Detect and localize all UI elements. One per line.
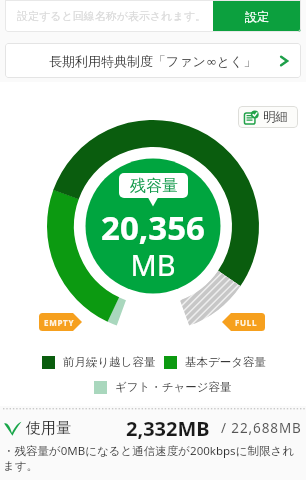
staticText: EMPTY — [44, 317, 75, 328]
button[interactable]: Empty — [39, 313, 82, 331]
button[interactable]: Full — [222, 313, 265, 331]
staticText: 設定 — [245, 9, 269, 24]
button[interactable]: 明細 — [244, 106, 298, 128]
staticText: 使用量 — [26, 419, 71, 438]
staticText: 20,356 — [0, 205, 306, 250]
staticText: 前月繰り越し容量 — [63, 355, 156, 369]
staticText: 明細 — [263, 109, 288, 125]
button[interactable]: 設定 — [213, 0, 301, 32]
staticText: 残容量 — [130, 176, 178, 196]
staticText: 2,332MB — [126, 415, 210, 442]
staticText: ・残容量が0MBになると通信速度が200kbpsに制限されます。 — [3, 443, 303, 474]
staticText: / 22,688MB — [221, 419, 302, 437]
other: 開く — [278, 55, 290, 67]
staticText: 長期利用特典制度「ファン∞とく」 — [49, 53, 257, 69]
staticText: MB — [0, 245, 306, 284]
staticText: ギフト・チャージ容量 — [115, 380, 232, 394]
staticText: 設定すると回線名称が表示されます。 — [17, 9, 207, 23]
button[interactable]: 長期利用特典制度「ファン∞とく」 — [5, 43, 301, 78]
staticText: 基本データ容量 — [185, 355, 267, 369]
staticText: FULL — [235, 317, 258, 328]
